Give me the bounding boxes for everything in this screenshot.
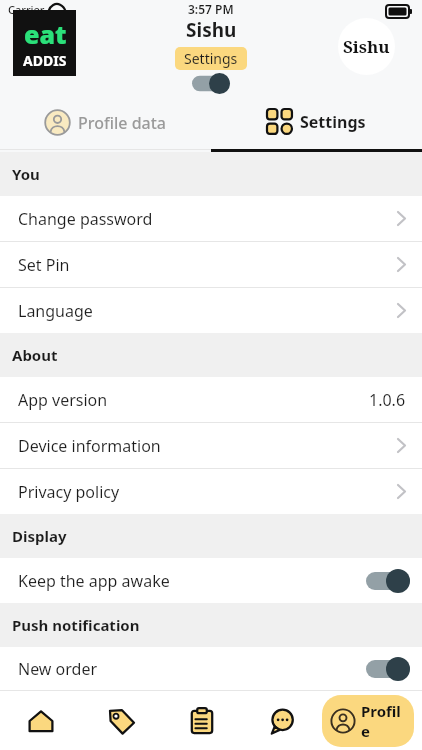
staticText: You: [12, 164, 40, 184]
button[interactable]: Home: [0, 691, 81, 750]
button[interactable]: Profile data: [0, 95, 211, 149]
button[interactable]: Chat: [242, 691, 322, 750]
staticText: Profile: [361, 701, 402, 741]
staticText: Sishu: [186, 17, 237, 43]
staticText: 3:57 PM: [188, 1, 234, 17]
staticText: eat: [24, 17, 67, 51]
staticText: About: [12, 345, 58, 365]
button[interactable]: Device information: [0, 423, 422, 468]
button[interactable]: eat ADDIS logo: [13, 10, 76, 76]
staticText: Privacy policy: [18, 481, 397, 503]
button[interactable]: Toggle: [366, 657, 410, 681]
staticText: Set Pin: [18, 254, 397, 276]
button[interactable]: Offers: [81, 691, 162, 750]
staticText: Settings: [184, 49, 238, 68]
staticText: Profile data: [78, 112, 167, 134]
staticText: Settings: [300, 111, 366, 133]
button[interactable]: Restaurant logo: [338, 18, 395, 75]
button[interactable]: Toggle: [366, 569, 410, 593]
staticText: App version: [18, 389, 369, 411]
button[interactable]: Change password: [0, 196, 422, 241]
staticText: ADDIS: [23, 51, 67, 70]
button[interactable]: Set Pin: [0, 242, 422, 287]
staticText: Carrier: [8, 2, 45, 17]
button[interactable]: New order: [0, 647, 422, 690]
button[interactable]: Profile: [322, 695, 414, 747]
staticText: 1.0.6: [369, 389, 406, 411]
button[interactable]: Keep the app awake: [0, 558, 422, 603]
staticText: Device information: [18, 435, 397, 457]
staticText: Change password: [18, 208, 397, 230]
button[interactable]: Settings: [211, 95, 422, 149]
staticText: Display: [12, 526, 67, 546]
button[interactable]: App version: [0, 377, 422, 422]
staticText: Push notification: [12, 615, 140, 635]
staticText: Keep the app awake: [18, 570, 366, 592]
button[interactable]: Privacy policy: [0, 469, 422, 514]
button[interactable]: Language: [0, 288, 422, 333]
staticText: Sishu: [343, 35, 390, 58]
staticText: Language: [18, 300, 397, 322]
staticText: New order: [18, 658, 366, 680]
button[interactable]: Settings: [175, 47, 247, 70]
button[interactable]: Toggle: [192, 73, 230, 94]
button[interactable]: Orders: [162, 691, 242, 750]
